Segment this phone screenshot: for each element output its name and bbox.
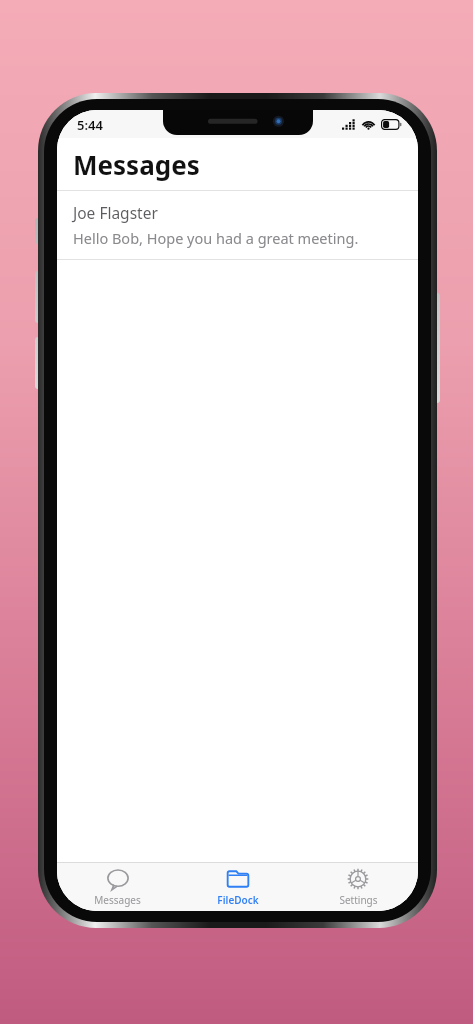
button[interactable]: Settings xyxy=(298,863,418,911)
button[interactable]: Joe Flagster xyxy=(57,191,418,259)
staticText: 5:44 xyxy=(77,116,103,134)
staticText: Hello Bob, Hope you had a great meeting. xyxy=(73,228,359,248)
other: Settings xyxy=(347,868,369,890)
staticText: Messages xyxy=(73,147,200,182)
other: Messages xyxy=(107,868,129,890)
button[interactable]: FileDock xyxy=(178,863,298,911)
staticText: FileDock xyxy=(217,893,259,907)
staticText: Settings xyxy=(339,893,378,907)
staticText: Joe Flagster xyxy=(73,202,158,223)
other: FileDock xyxy=(227,868,249,890)
button[interactable]: Messages xyxy=(57,863,178,911)
staticText: Messages xyxy=(94,893,141,907)
